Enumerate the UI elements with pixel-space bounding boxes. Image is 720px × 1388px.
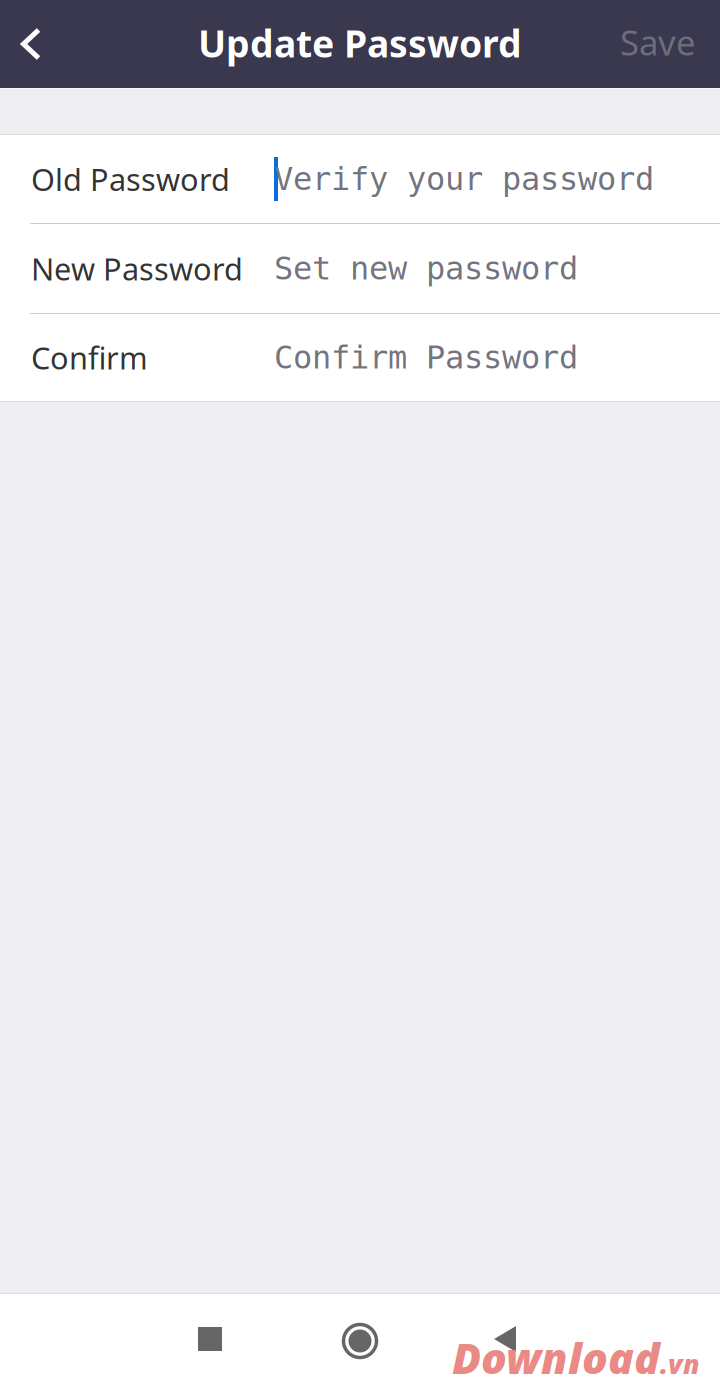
staticText: Update Password — [198, 18, 522, 68]
button[interactable]: Recent apps — [165, 1309, 255, 1369]
staticText: Confirm — [31, 337, 148, 378]
staticText: Old Password — [31, 159, 230, 199]
button[interactable]: Confirm — [0, 314, 720, 401]
staticText: Set new password — [274, 250, 578, 287]
staticText: New Password — [31, 248, 243, 289]
button[interactable]: Back — [0, 2, 62, 86]
staticText: Confirm Password — [274, 339, 578, 376]
button[interactable]: Save — [596, 2, 720, 86]
button[interactable]: Home — [315, 1311, 405, 1371]
staticText: Download — [452, 1329, 660, 1386]
button[interactable]: Old Password — [0, 135, 720, 223]
staticText: Save — [620, 19, 696, 65]
button[interactable]: Back — [460, 1309, 550, 1369]
button[interactable]: New Password — [0, 224, 720, 313]
staticText: .vn — [660, 1346, 700, 1381]
staticText: Verify your password — [274, 161, 654, 197]
